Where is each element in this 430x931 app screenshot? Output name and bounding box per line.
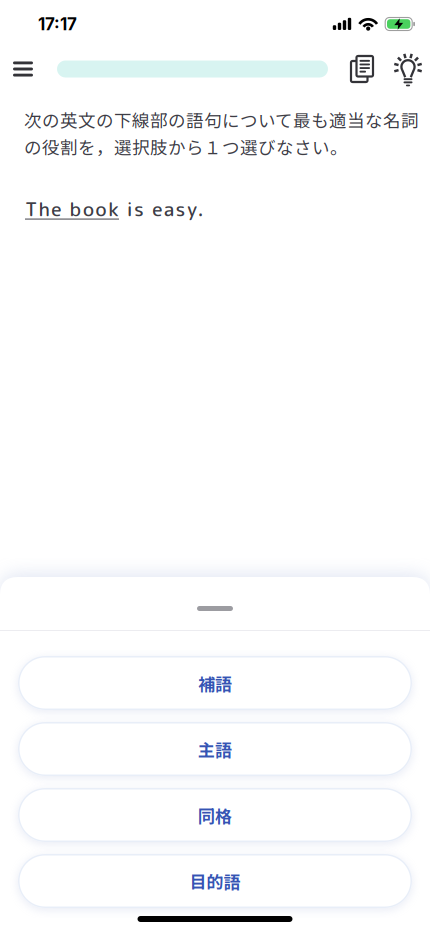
button[interactable]: 目的語	[18, 854, 412, 908]
button[interactable]: 同格	[18, 788, 412, 842]
button[interactable]: 補語	[18, 656, 412, 710]
button[interactable]: Copy question	[351, 56, 373, 82]
staticText: 補語	[198, 671, 232, 695]
staticText: 目的語	[189, 869, 240, 893]
staticText: 次の英文の下線部の語句について最も適当な名詞 の役割を，選択肢から１つ選びなさい…	[24, 107, 419, 159]
button[interactable]: 主語	[18, 722, 412, 776]
staticText: The book is easy.	[25, 195, 204, 222]
staticText: 主語	[198, 737, 232, 761]
button[interactable]: Hint	[394, 53, 422, 85]
staticText: 同格	[198, 803, 232, 827]
button[interactable]: Menu	[13, 61, 33, 76]
staticText: 17:17	[38, 14, 77, 34]
